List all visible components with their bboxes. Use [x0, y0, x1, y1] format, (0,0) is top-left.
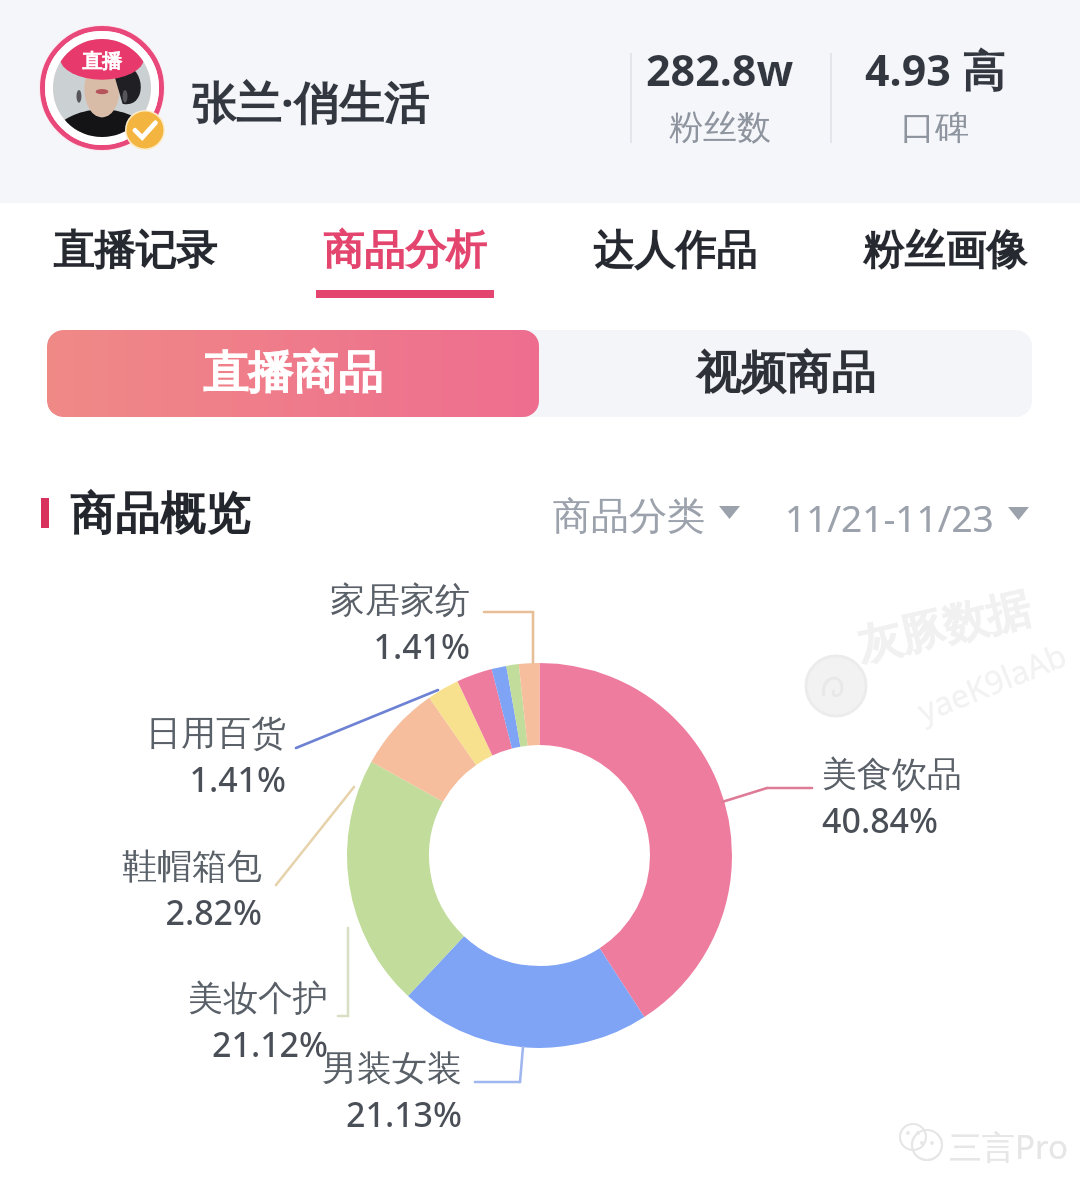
button[interactable]: 商品分类: [553, 492, 740, 540]
staticText: 40.84%: [822, 797, 1080, 843]
staticText: 282.8w: [646, 40, 794, 99]
staticText: 商品分类: [553, 492, 705, 540]
staticText: 灰豚数据: [852, 581, 1036, 674]
staticText: 4.93 高: [865, 40, 1006, 99]
staticText: 粉丝画像: [863, 225, 1027, 277]
staticText: 1.41%: [26, 756, 286, 802]
button[interactable]: 达人作品: [540, 203, 810, 315]
staticText: 美食饮品: [822, 752, 1080, 796]
staticText: 家居家纺: [210, 578, 470, 622]
staticText: 直播: [82, 49, 122, 74]
staticText: 直播记录: [53, 225, 217, 277]
button[interactable]: 直播记录: [0, 203, 270, 315]
staticText: 2.82%: [2, 889, 262, 935]
staticText: 1.41%: [210, 623, 470, 669]
button[interactable]: 11/21-11/23: [785, 492, 1029, 542]
staticText: 视频商品: [696, 345, 876, 402]
staticText: 日用百货: [26, 711, 286, 755]
staticText: 11/21-11/23: [785, 492, 994, 542]
button[interactable]: 直播商品: [47, 330, 539, 417]
staticText: 达人作品: [593, 225, 757, 277]
button[interactable]: 视频商品: [539, 330, 1032, 417]
staticText: 男装女装: [202, 1046, 462, 1090]
staticText: 直播商品: [203, 345, 383, 402]
button[interactable]: 商品分析: [270, 203, 540, 315]
staticText: 粉丝数: [669, 106, 771, 149]
staticText: 21.12%: [68, 1021, 328, 1067]
staticText: 口碑: [901, 106, 969, 149]
staticText: 商品概览: [70, 486, 250, 543]
staticText: yaeK9laAb: [911, 633, 1073, 732]
staticText: 21.13%: [202, 1091, 462, 1137]
button[interactable]: 粉丝画像: [810, 203, 1080, 315]
staticText: 鞋帽箱包: [2, 844, 262, 888]
staticText: 美妆个护: [68, 976, 328, 1020]
staticText: 商品分析: [323, 225, 487, 277]
staticText: 张兰·俏生活: [191, 71, 429, 132]
staticText: 三言Pro: [949, 1124, 1068, 1169]
